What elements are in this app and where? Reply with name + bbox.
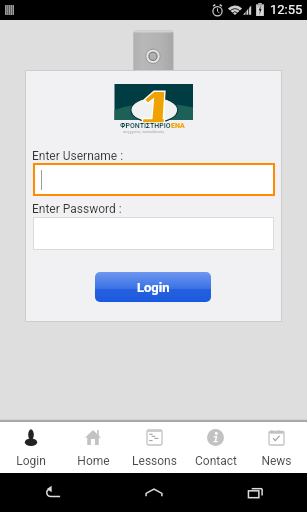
button[interactable]: Home bbox=[137, 476, 171, 510]
staticText: συγχρονη εκπαίδευση bbox=[123, 129, 164, 134]
button[interactable]: Recent apps bbox=[239, 476, 273, 510]
staticText: Enter Username : bbox=[32, 149, 124, 163]
staticText: ΦΡΟΝΤΙΣΤΗΡΙΟ bbox=[120, 122, 171, 130]
staticText: ΕΝΑ bbox=[171, 122, 185, 130]
staticText: 12:55 bbox=[270, 2, 303, 17]
staticText: Login bbox=[16, 454, 46, 468]
button[interactable]: Login bbox=[0, 422, 62, 473]
staticText: Login bbox=[137, 280, 170, 295]
button[interactable]: Contact bbox=[185, 422, 246, 473]
staticText: Home bbox=[77, 454, 110, 468]
button[interactable]: Home bbox=[62, 422, 124, 473]
button[interactable]: Back bbox=[35, 476, 69, 510]
staticText: Enter Password : bbox=[32, 202, 122, 216]
button[interactable]: News bbox=[246, 422, 307, 473]
button[interactable]: Lessons bbox=[124, 422, 185, 473]
staticText: Contact bbox=[195, 454, 237, 468]
button[interactable]: Login bbox=[95, 272, 211, 302]
staticText: Lessons bbox=[132, 454, 177, 468]
button[interactable] bbox=[33, 217, 274, 250]
staticText: News bbox=[261, 454, 292, 468]
button[interactable] bbox=[33, 163, 275, 196]
